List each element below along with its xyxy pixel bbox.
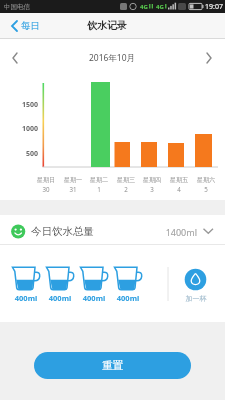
staticText: 中国电信 xyxy=(4,3,30,11)
button[interactable] xyxy=(43,261,77,303)
staticText: 今日饮水总量 xyxy=(31,225,94,238)
button[interactable] xyxy=(111,261,145,303)
button[interactable]: 重置 xyxy=(34,352,191,379)
staticText: 30 xyxy=(33,185,59,193)
button[interactable] xyxy=(0,45,34,71)
button[interactable]: 今日饮水总量 xyxy=(0,215,225,245)
staticText: 2 xyxy=(113,185,139,193)
staticText: 星期二 xyxy=(86,176,112,184)
staticText: 19:07 xyxy=(205,2,223,12)
staticText: 星期五 xyxy=(166,176,192,184)
staticText: 400ml xyxy=(77,293,111,303)
staticText: 400ml xyxy=(111,293,145,303)
staticText: 3 xyxy=(139,185,165,193)
staticText: 1000 xyxy=(14,124,38,134)
staticText: 500 xyxy=(14,149,38,159)
staticText: 加一杯 xyxy=(179,294,213,303)
staticText: 星期四 xyxy=(139,176,165,184)
staticText: 星期一 xyxy=(60,176,86,184)
staticText: 1400ml xyxy=(152,226,197,238)
staticText: 5 xyxy=(193,185,219,193)
staticText: 400ml xyxy=(9,293,43,303)
staticText: 2016年10月 xyxy=(72,52,152,64)
staticText: 1 xyxy=(86,185,112,193)
staticText: 星期日 xyxy=(33,176,59,184)
staticText: 31 xyxy=(60,185,86,193)
staticText: 400ml xyxy=(43,293,77,303)
staticText: 4G xyxy=(156,3,164,11)
staticText: 星期三 xyxy=(113,176,139,184)
staticText: 星期六 xyxy=(193,176,219,184)
staticText: 4G xyxy=(140,3,148,11)
button[interactable] xyxy=(9,261,43,303)
staticText: 1500 xyxy=(14,100,38,110)
button[interactable] xyxy=(197,45,225,71)
staticText: 重置 xyxy=(102,359,123,372)
staticText: 4 xyxy=(166,185,192,193)
button[interactable] xyxy=(12,13,62,39)
staticText: 饮水记录 xyxy=(67,19,147,32)
button[interactable] xyxy=(77,261,111,303)
button[interactable] xyxy=(181,263,211,303)
staticText: 每日 xyxy=(21,20,40,32)
